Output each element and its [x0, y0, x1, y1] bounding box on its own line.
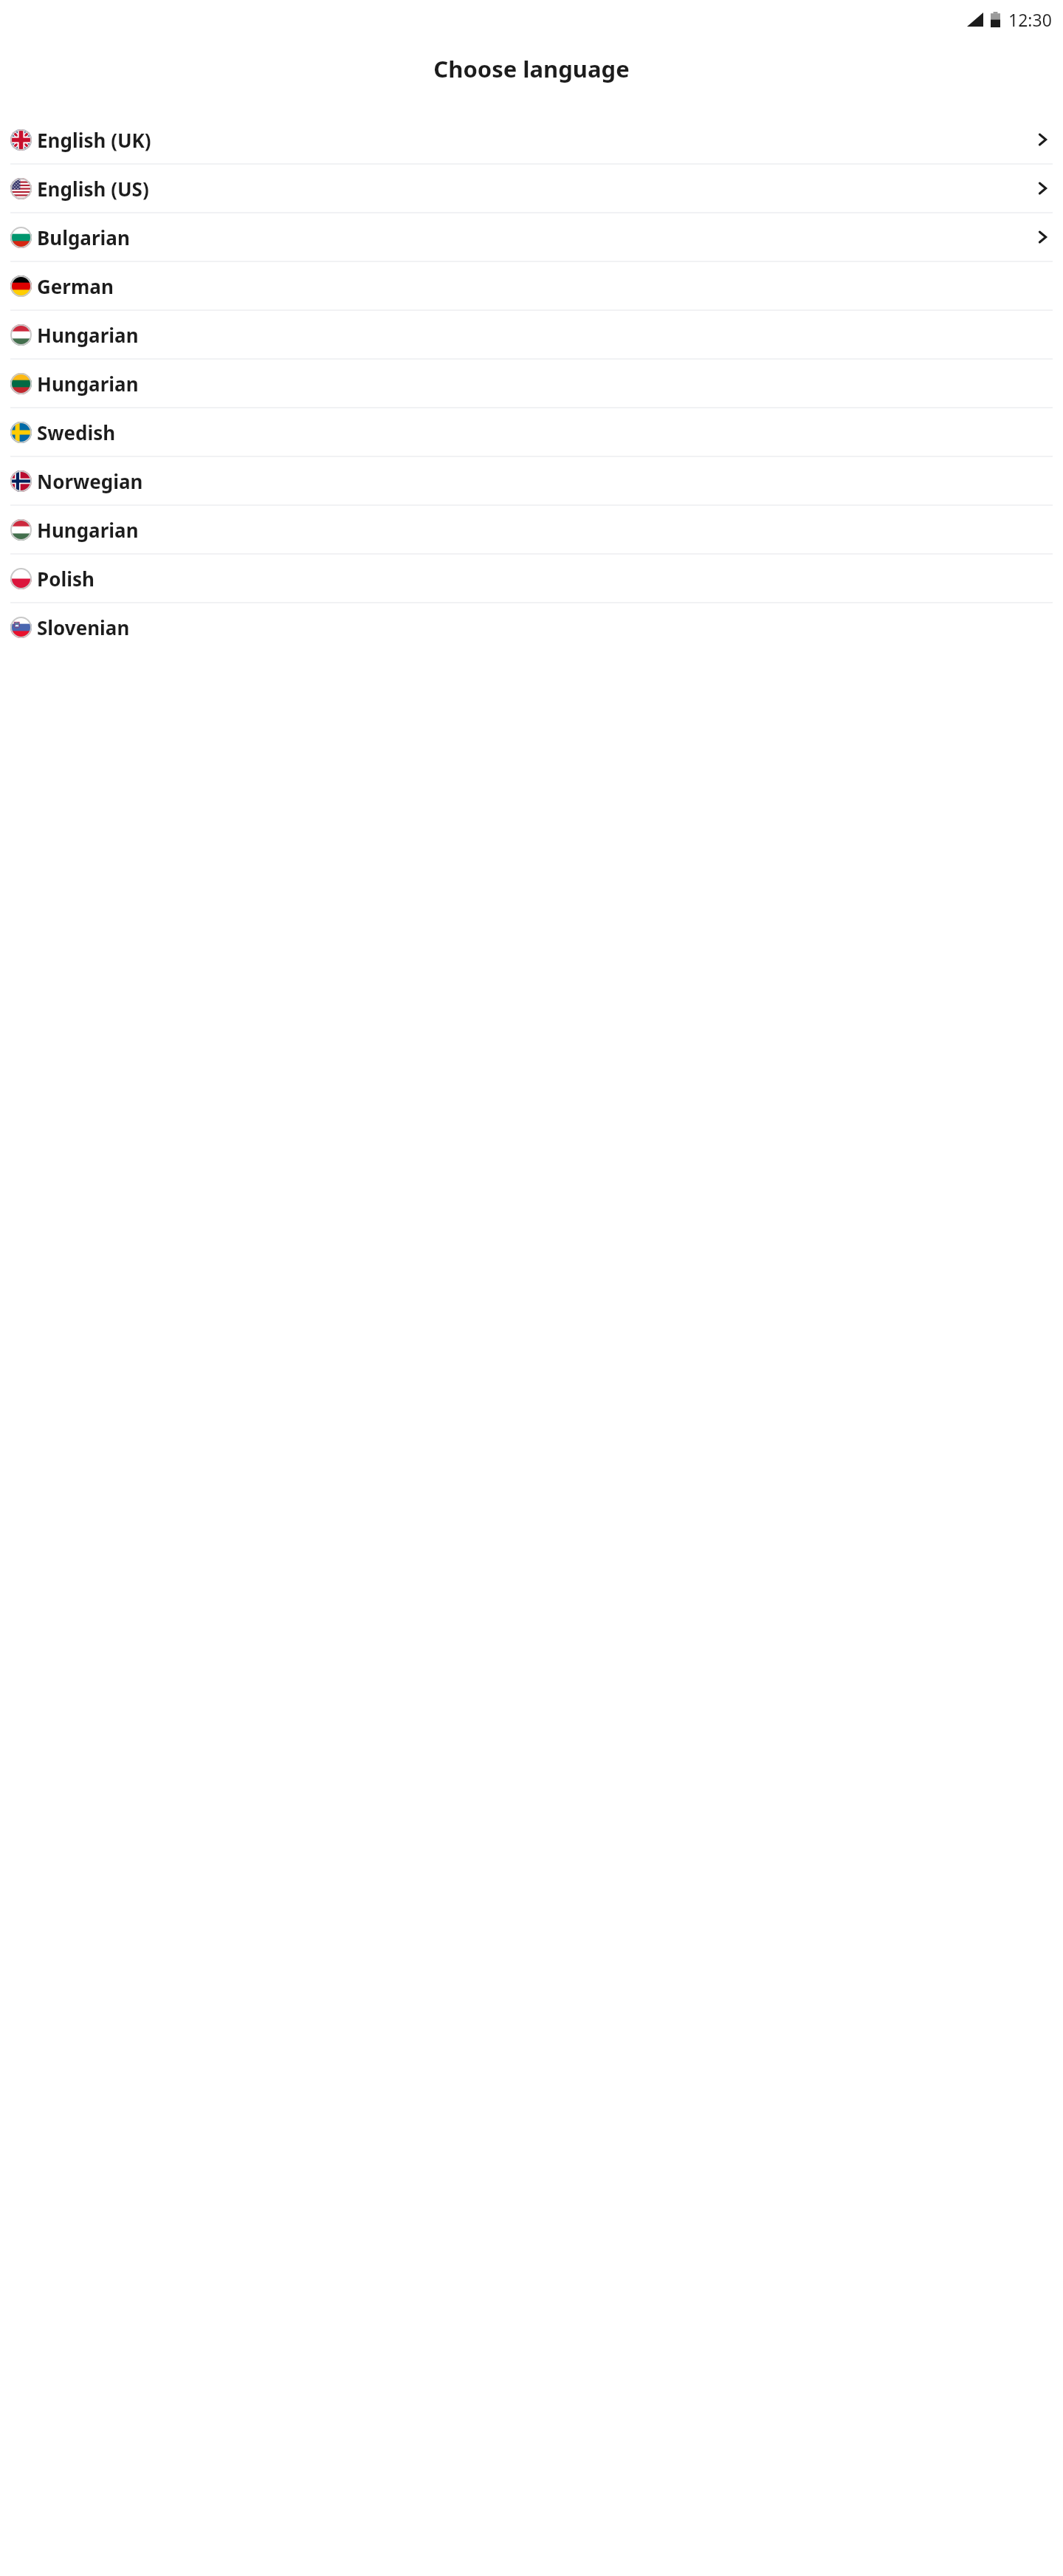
button[interactable]: Bulgarian — [0, 213, 1063, 261]
staticText: Swedish — [37, 419, 116, 445]
staticText: German — [37, 273, 114, 299]
staticText: 12:30 — [1008, 8, 1052, 31]
button[interactable]: Hungarian — [0, 311, 1063, 358]
staticText: Hungarian — [37, 371, 139, 397]
staticText: Choose language — [0, 53, 1063, 84]
staticText: Slovenian — [37, 614, 130, 640]
staticText: English (US) — [37, 176, 149, 202]
button[interactable]: Swedish — [0, 408, 1063, 456]
staticText: Bulgarian — [37, 225, 130, 250]
button[interactable]: Polish — [0, 555, 1063, 602]
staticText: English (UK) — [37, 127, 151, 153]
staticText: Polish — [37, 566, 94, 592]
button[interactable]: English (UK) — [0, 116, 1063, 163]
button[interactable]: Norwegian — [0, 457, 1063, 504]
staticText: Hungarian — [37, 517, 139, 543]
staticText: Hungarian — [37, 322, 139, 348]
button[interactable]: Hungarian — [0, 360, 1063, 407]
button[interactable]: Slovenian — [0, 603, 1063, 651]
staticText: Norwegian — [37, 468, 143, 494]
button[interactable]: Hungarian — [0, 506, 1063, 553]
button[interactable]: English (US) — [0, 165, 1063, 212]
button[interactable]: German — [0, 262, 1063, 309]
